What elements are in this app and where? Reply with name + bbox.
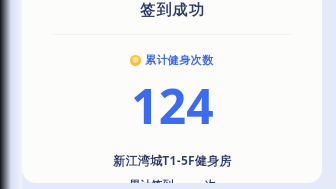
staticText: 次	[202, 177, 216, 183]
button[interactable]: Fitness badge	[130, 53, 214, 67]
staticText: 签到成功	[140, 1, 205, 20]
staticText: 累计健身次数	[145, 53, 214, 67]
other: Fitness badge	[130, 55, 141, 66]
staticText: 累计签到	[129, 177, 176, 183]
staticText: 124	[131, 73, 214, 138]
staticText: 新江湾城T1-5F健身房	[113, 152, 232, 168]
